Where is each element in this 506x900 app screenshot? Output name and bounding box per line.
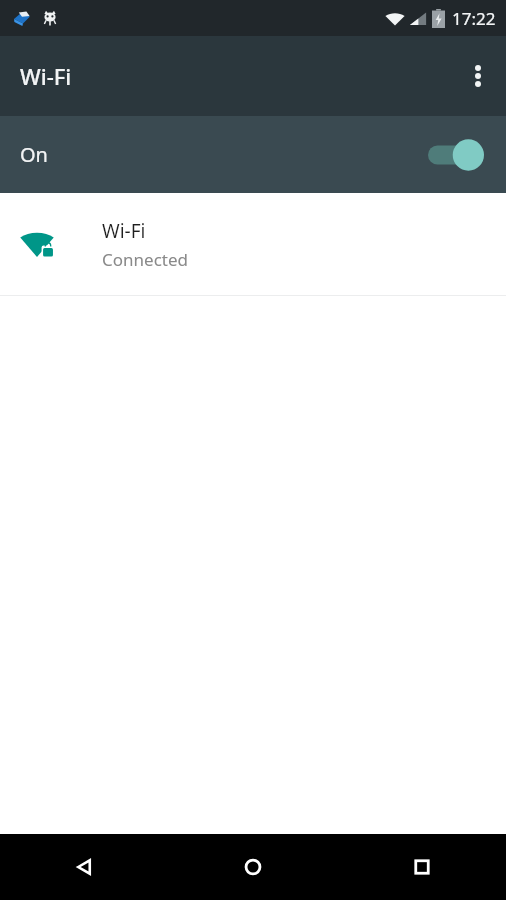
button[interactable]: Wi-Fi	[0, 193, 506, 295]
other: Wi-Fi on	[428, 138, 484, 172]
button[interactable]: Back	[0, 834, 168, 900]
button[interactable]: Home	[168, 834, 337, 900]
button[interactable]: More options	[450, 48, 506, 104]
staticText: Wi-Fi	[102, 218, 146, 244]
button[interactable]: Recent apps	[337, 834, 506, 900]
button[interactable]: On	[0, 116, 506, 193]
staticText: Wi-Fi	[20, 61, 72, 91]
staticText: 17:22	[452, 7, 496, 30]
staticText: Connected	[102, 248, 188, 271]
staticText: On	[20, 141, 48, 168]
